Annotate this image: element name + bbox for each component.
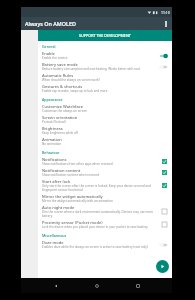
button[interactable]: Checked [160, 168, 169, 177]
staticText: Mirror the widget automatically [42, 194, 103, 199]
button[interactable]: Mirror the widget automatically [38, 193, 172, 204]
button[interactable]: Gestures & shortcuts [38, 83, 172, 94]
button[interactable]: Start after lock [38, 178, 172, 193]
staticText: Only start the screen after the screen i… [42, 184, 158, 192]
staticText: Screen orientation [42, 115, 78, 120]
button[interactable]: Automatic Rules [38, 72, 172, 83]
button[interactable]: Switch on [158, 52, 169, 60]
staticText: Gestures & shortcuts [42, 84, 83, 89]
staticText: Lock the device when you placed your dev… [42, 225, 149, 229]
staticText: General [42, 44, 56, 49]
staticText: Enables doze while the always on screen … [42, 245, 148, 249]
staticText: Customize Watchface [42, 104, 84, 109]
staticText: Enable [42, 51, 55, 56]
staticText: Reduce battery consumption and overheati… [42, 67, 140, 71]
button[interactable]: Doze mode [38, 239, 172, 250]
staticText: Proximity sensor (Pocket mode) [42, 220, 103, 225]
staticText: Miscellaneous [42, 233, 67, 238]
staticText: Mirror the widget automatically with an … [42, 199, 113, 203]
button[interactable]: Home [90, 279, 103, 292]
button[interactable]: Brightness [38, 125, 172, 136]
staticText: Auto night mode [42, 205, 75, 210]
staticText: Customize the always on screen [42, 109, 87, 113]
button[interactable]: Battery save mode [38, 61, 172, 72]
staticText: Show notification content when received [42, 173, 100, 177]
button[interactable]: Recents [131, 279, 144, 292]
button[interactable]: Enable [38, 50, 172, 61]
button[interactable]: Notifications [38, 156, 172, 167]
staticText: Appearance [42, 97, 63, 102]
button[interactable]: Auto night mode [38, 204, 172, 219]
staticText: Notification content [42, 168, 81, 173]
button[interactable]: Customize Watchface [38, 103, 172, 114]
staticText: 11:10 [161, 10, 170, 15]
button[interactable]: Proximity sensor (Pocket mode) [38, 219, 172, 230]
button[interactable]: Unchecked [160, 220, 169, 229]
button[interactable]: Switch off [158, 241, 169, 249]
staticText: Doze mode [42, 240, 64, 245]
button[interactable]: Checked [160, 181, 169, 190]
button[interactable]: SUPPORT THE DEVELOPMENT [38, 30, 172, 41]
button[interactable]: Unchecked [160, 207, 169, 216]
staticText: Always On AMOLED [25, 20, 76, 27]
staticText: Enable tap to wake, swipe up to lock and… [42, 89, 108, 93]
staticText: When should the always on screen work? [42, 78, 100, 82]
button[interactable]: Checked [160, 157, 169, 166]
staticText: Automatic Rules [42, 73, 74, 78]
staticText: Brightness [42, 126, 63, 131]
staticText: Start after lock [42, 179, 71, 184]
staticText: No animation [42, 142, 62, 146]
button[interactable]: Animation [38, 136, 172, 147]
staticText: Dim the screen when a dark environment a… [42, 210, 158, 218]
staticText: Behaviour [42, 150, 60, 155]
staticText: Enable the service [42, 56, 68, 60]
button[interactable]: Back [49, 279, 62, 292]
staticText: Portrait (Vertical) [42, 120, 66, 124]
button[interactable]: Notification content [38, 167, 172, 178]
staticText: Battery save mode [42, 62, 78, 67]
staticText: Animation [42, 137, 62, 142]
staticText: Show notifications from other apps when … [42, 162, 113, 166]
staticText: Notifications [42, 157, 67, 162]
staticText: SUPPORT THE DEVELOPMENT [79, 33, 131, 38]
button[interactable]: More options [160, 18, 171, 29]
staticText: Keep brightness while off [42, 131, 78, 135]
button[interactable]: Start service [156, 260, 169, 273]
button[interactable]: Switch off [158, 63, 169, 71]
button[interactable]: Screen orientation [38, 114, 172, 125]
